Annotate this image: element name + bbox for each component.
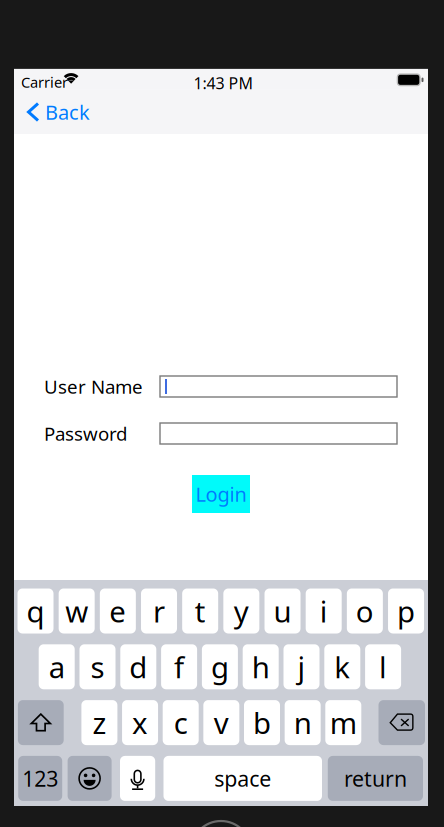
button[interactable]: y [223,588,259,633]
staticText: r [153,591,165,630]
button[interactable]: j [283,644,319,689]
button[interactable]: Emoji keyboard [68,756,112,801]
button[interactable]: k [324,644,360,689]
button[interactable]: o [347,588,383,633]
staticText: o [356,591,374,630]
staticText: i [320,591,328,630]
button[interactable]: return [328,756,423,801]
staticText: s [90,647,104,686]
staticText: Back [45,99,90,125]
button[interactable]: d [120,644,156,689]
staticText: g [211,647,229,686]
button[interactable]: t [182,588,218,633]
staticText: z [92,703,106,742]
button[interactable]: r [141,588,177,633]
staticText: b [253,703,271,742]
staticText: Login [195,481,246,507]
staticText: e [109,591,126,630]
button[interactable]: c [163,700,199,745]
button[interactable]: l [365,644,401,689]
button[interactable]: 123 [18,756,62,801]
button[interactable]: m [325,700,361,745]
staticText: h [252,647,270,686]
staticText: 123 [22,764,58,792]
staticText: Carrier [21,72,68,92]
staticText: l [379,647,387,686]
button[interactable]: q [17,588,53,633]
staticText: w [65,591,88,630]
staticText: v [214,703,229,742]
staticText: p [397,591,415,630]
staticText: k [334,647,350,686]
button[interactable]: s [79,644,115,689]
button[interactable]: b [244,700,280,745]
button[interactable]: Login [192,475,250,513]
staticText: d [129,647,147,686]
staticText: u [273,591,291,630]
button[interactable]: u [264,588,300,633]
staticText: n [294,703,312,742]
staticText: User Name [44,374,143,399]
staticText: y [234,591,249,630]
button[interactable]: n [285,700,321,745]
button[interactable]: w [59,588,95,633]
button[interactable]: Back [14,90,98,134]
button[interactable]: Shift [18,700,64,745]
staticText: return [344,764,407,792]
button[interactable]: e [100,588,136,633]
button[interactable]: z [81,700,117,745]
button[interactable]: x [122,700,158,745]
button[interactable]: p [388,588,424,633]
staticText: c [174,703,188,742]
staticText: x [132,703,148,742]
button[interactable]: space [163,756,322,801]
button[interactable]: a [39,644,75,689]
staticText: m [330,703,357,742]
button[interactable]: g [202,644,238,689]
staticText: Password [44,421,127,446]
staticText: a [49,647,65,686]
staticText: t [195,591,206,630]
staticText: space [214,764,271,792]
button[interactable]: h [243,644,279,689]
staticText: 1:43 PM [193,72,253,94]
button[interactable]: v [203,700,239,745]
button[interactable]: Delete [378,700,425,745]
button[interactable]: i [306,588,342,633]
staticText: j [297,647,305,686]
staticText: q [26,591,44,630]
staticText: f [174,647,184,686]
button[interactable]: Dictation [120,756,155,801]
button[interactable]: f [161,644,197,689]
